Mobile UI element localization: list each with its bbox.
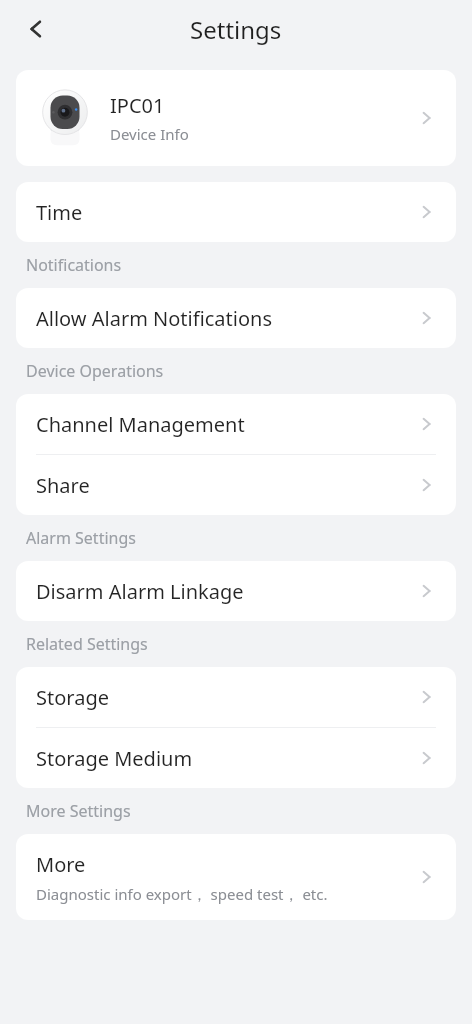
staticText: Device Info	[110, 124, 189, 144]
staticText: Allow Alarm Notifications	[36, 305, 416, 332]
button[interactable]: Allow Alarm Notifications	[16, 288, 456, 348]
staticText: Time	[36, 199, 416, 226]
button[interactable]: Disarm Alarm Linkage	[16, 561, 456, 621]
staticText: Storage Medium	[36, 745, 416, 772]
staticText: More Settings	[26, 800, 131, 822]
staticText: Share	[36, 472, 416, 499]
staticText: Channel Management	[36, 411, 416, 438]
staticText: Settings	[190, 13, 282, 46]
button[interactable]: More	[16, 834, 456, 920]
staticText: Alarm Settings	[26, 527, 136, 549]
button[interactable]: Share	[16, 455, 456, 515]
staticText: Related Settings	[26, 633, 148, 655]
staticText: Device Operations	[26, 360, 164, 382]
button[interactable]: Channel Management	[16, 394, 456, 454]
button[interactable]: IPC01	[16, 70, 456, 166]
staticText: More	[36, 851, 86, 878]
button[interactable]: Storage Medium	[16, 728, 456, 788]
button[interactable]: Time	[16, 182, 456, 242]
staticText: Storage	[36, 684, 416, 711]
button[interactable]: Storage	[16, 667, 456, 727]
button[interactable]: Back	[14, 7, 58, 51]
staticText: Diagnostic info export， speed test， etc.	[36, 884, 328, 904]
staticText: Disarm Alarm Linkage	[36, 578, 416, 605]
staticText: IPC01	[110, 92, 165, 119]
staticText: Notifications	[26, 254, 122, 276]
